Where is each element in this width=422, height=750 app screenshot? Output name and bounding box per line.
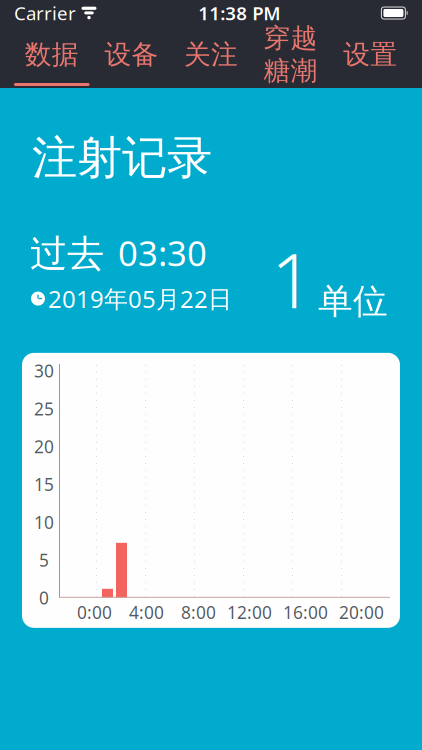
button[interactable]: 设置 bbox=[330, 26, 410, 88]
staticText: 5 bbox=[39, 548, 49, 571]
staticText: 11:38 PM bbox=[198, 1, 280, 25]
staticText: 2019年05月22日 bbox=[48, 283, 232, 314]
staticText: 设备 bbox=[104, 38, 158, 71]
staticText: 穿越糖潮 bbox=[264, 22, 318, 87]
button[interactable]: 关注 bbox=[171, 26, 251, 88]
staticText: 1 bbox=[271, 230, 314, 329]
staticText: 10 bbox=[34, 511, 54, 534]
button[interactable]: 设备 bbox=[92, 26, 171, 88]
staticText: 注射记录 bbox=[32, 130, 212, 186]
staticText: 25 bbox=[34, 397, 54, 420]
staticText: 16:00 bbox=[283, 601, 328, 624]
button[interactable]: 数据 bbox=[12, 26, 92, 88]
staticText: 15 bbox=[34, 473, 54, 496]
staticText: 4:00 bbox=[129, 601, 164, 624]
staticText: 0:00 bbox=[77, 601, 112, 624]
staticText: 设置 bbox=[343, 38, 397, 71]
staticText: Carrier bbox=[14, 1, 76, 25]
staticText: 30 bbox=[34, 359, 54, 382]
button[interactable]: 穿越糖潮 bbox=[251, 26, 330, 88]
staticText: 关注 bbox=[184, 38, 238, 71]
staticText: 过去 bbox=[30, 231, 104, 277]
staticText: 8:00 bbox=[181, 601, 216, 624]
staticText: 20:00 bbox=[339, 601, 384, 624]
staticText: 20 bbox=[34, 435, 54, 458]
staticText: 单位 bbox=[318, 280, 388, 323]
staticText: 12:00 bbox=[227, 601, 272, 624]
staticText: 03:30 bbox=[118, 230, 207, 276]
staticText: 0 bbox=[39, 586, 49, 609]
staticText: 数据 bbox=[25, 38, 79, 71]
